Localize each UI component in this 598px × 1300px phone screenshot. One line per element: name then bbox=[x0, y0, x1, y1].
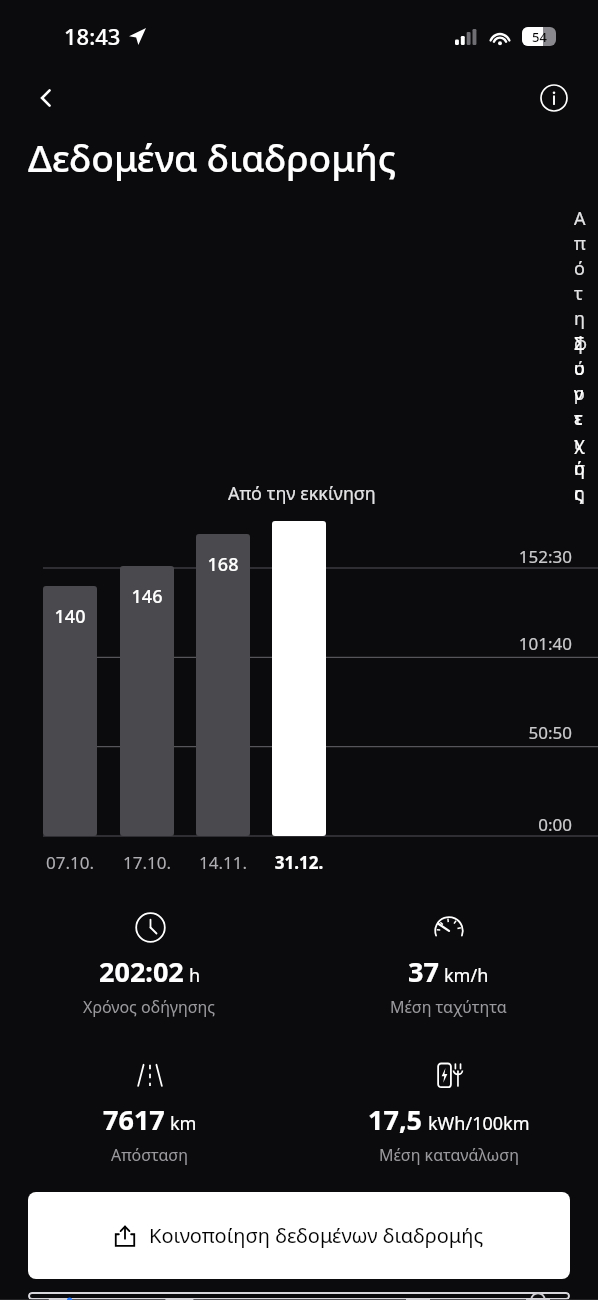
staticText: km/h bbox=[444, 963, 489, 988]
button[interactable]: Back bbox=[24, 76, 68, 120]
staticText: Μέση ταχύτητα bbox=[390, 996, 507, 1018]
staticText: 07.10. bbox=[38, 851, 102, 874]
button[interactable]: Αναφορά δεδομένων διαδρομών bbox=[28, 1292, 570, 1300]
staticText: Χρόνος οδήγησης bbox=[83, 996, 216, 1018]
staticText: Από την εκκίνηση bbox=[228, 481, 376, 506]
staticText: Απόσταση bbox=[111, 1144, 188, 1166]
staticText: 31.12. bbox=[267, 851, 331, 874]
staticText: 17,5 bbox=[368, 1101, 423, 1138]
staticText: Μέση κατανάλωση bbox=[379, 1144, 519, 1166]
staticText: h bbox=[189, 963, 201, 988]
staticText: 54 bbox=[532, 28, 547, 46]
staticText: 101:40 bbox=[0, 632, 572, 655]
staticText: 7617 bbox=[103, 1101, 165, 1138]
staticText: Αναφορά δεδομένων διαδρομών bbox=[147, 1292, 451, 1300]
staticText: 146 bbox=[120, 584, 174, 609]
staticText: 14.11. bbox=[191, 851, 255, 874]
button[interactable]: Από την εκκίνηση bbox=[30, 481, 574, 513]
staticText: 50:50 bbox=[0, 721, 572, 744]
staticText: kWh/100km bbox=[428, 1111, 530, 1136]
staticText: Κοινοποίηση δεδομένων διαδρομής bbox=[149, 1222, 484, 1249]
button[interactable]: Κοινοποίηση δεδομένων διαδρομής bbox=[28, 1192, 570, 1279]
staticText: 0:00 bbox=[0, 813, 572, 836]
button[interactable]: Info bbox=[532, 76, 576, 120]
staticText: 37 bbox=[408, 953, 439, 990]
staticText: Δεδομένα διαδρομής bbox=[28, 132, 397, 182]
staticText: 18:43 bbox=[64, 21, 121, 51]
staticText: 17.10. bbox=[115, 851, 179, 874]
staticText: km bbox=[170, 1111, 197, 1136]
staticText: 140 bbox=[43, 604, 97, 629]
staticText: 202:02 bbox=[99, 953, 184, 990]
staticText: 152:30 bbox=[0, 545, 572, 568]
staticText: 168 bbox=[196, 552, 250, 577]
